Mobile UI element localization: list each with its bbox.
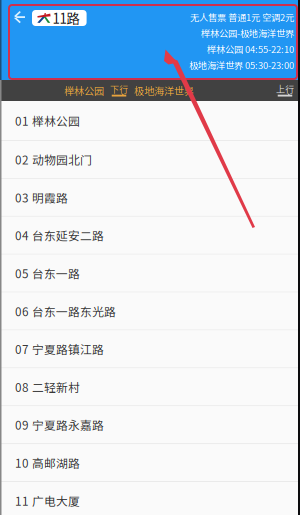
button[interactable]: 02 动物园北门 <box>0 141 300 178</box>
staticText: 07 宁夏路镇江路 <box>15 340 104 357</box>
staticText: 极地海洋世界 <box>134 83 194 98</box>
staticText: 01 榉林公园 <box>15 112 80 129</box>
button[interactable]: 11 广电大厦 <box>0 482 300 515</box>
button[interactable]: 01 榉林公园 <box>0 101 300 140</box>
staticText: 极地海洋世界 05:30-23:00 <box>189 58 294 72</box>
staticText: 无人售票 普通1元 空调2元 <box>190 10 294 24</box>
button[interactable]: 06 台东一路东光路 <box>0 292 300 330</box>
staticText: 10 高邮湖路 <box>15 454 80 471</box>
button[interactable]: 10 高邮湖路 <box>0 444 300 481</box>
button[interactable]: 07 宁夏路镇江路 <box>0 330 300 367</box>
staticText: 榉林公园-极地海洋世界 <box>201 26 294 40</box>
staticText: 上行 <box>276 82 294 95</box>
button[interactable]: Back <box>0 0 32 29</box>
staticText: 11 广电大厦 <box>15 492 80 509</box>
button[interactable]: 03 明霞路 <box>0 179 300 216</box>
staticText: 04 台东延安二路 <box>15 227 104 244</box>
staticText: 下行 <box>110 82 128 95</box>
staticText: 05 台东一路 <box>15 265 80 282</box>
staticText: 09 宁夏路永嘉路 <box>15 416 104 433</box>
staticText: 06 台东一路东光路 <box>15 303 116 320</box>
staticText: 02 动物园北门 <box>15 151 92 168</box>
staticText: 榉林公园 <box>64 83 104 98</box>
button[interactable]: 05 台东一路 <box>0 255 300 292</box>
button[interactable]: 上行 <box>276 83 300 97</box>
staticText: 08 二轻新村 <box>15 378 80 395</box>
button[interactable]: 11路 <box>32 0 87 26</box>
button[interactable]: 09 宁夏路永嘉路 <box>0 406 300 443</box>
staticText: 11路 <box>53 8 80 28</box>
staticText: 03 明霞路 <box>15 189 68 206</box>
button[interactable]: 榉林公园 <box>0 83 194 98</box>
button[interactable]: 08 二轻新村 <box>0 368 300 405</box>
staticText: 榉林公园 04:55-22:10 <box>207 42 294 56</box>
button[interactable]: 04 台东延安二路 <box>0 217 300 254</box>
